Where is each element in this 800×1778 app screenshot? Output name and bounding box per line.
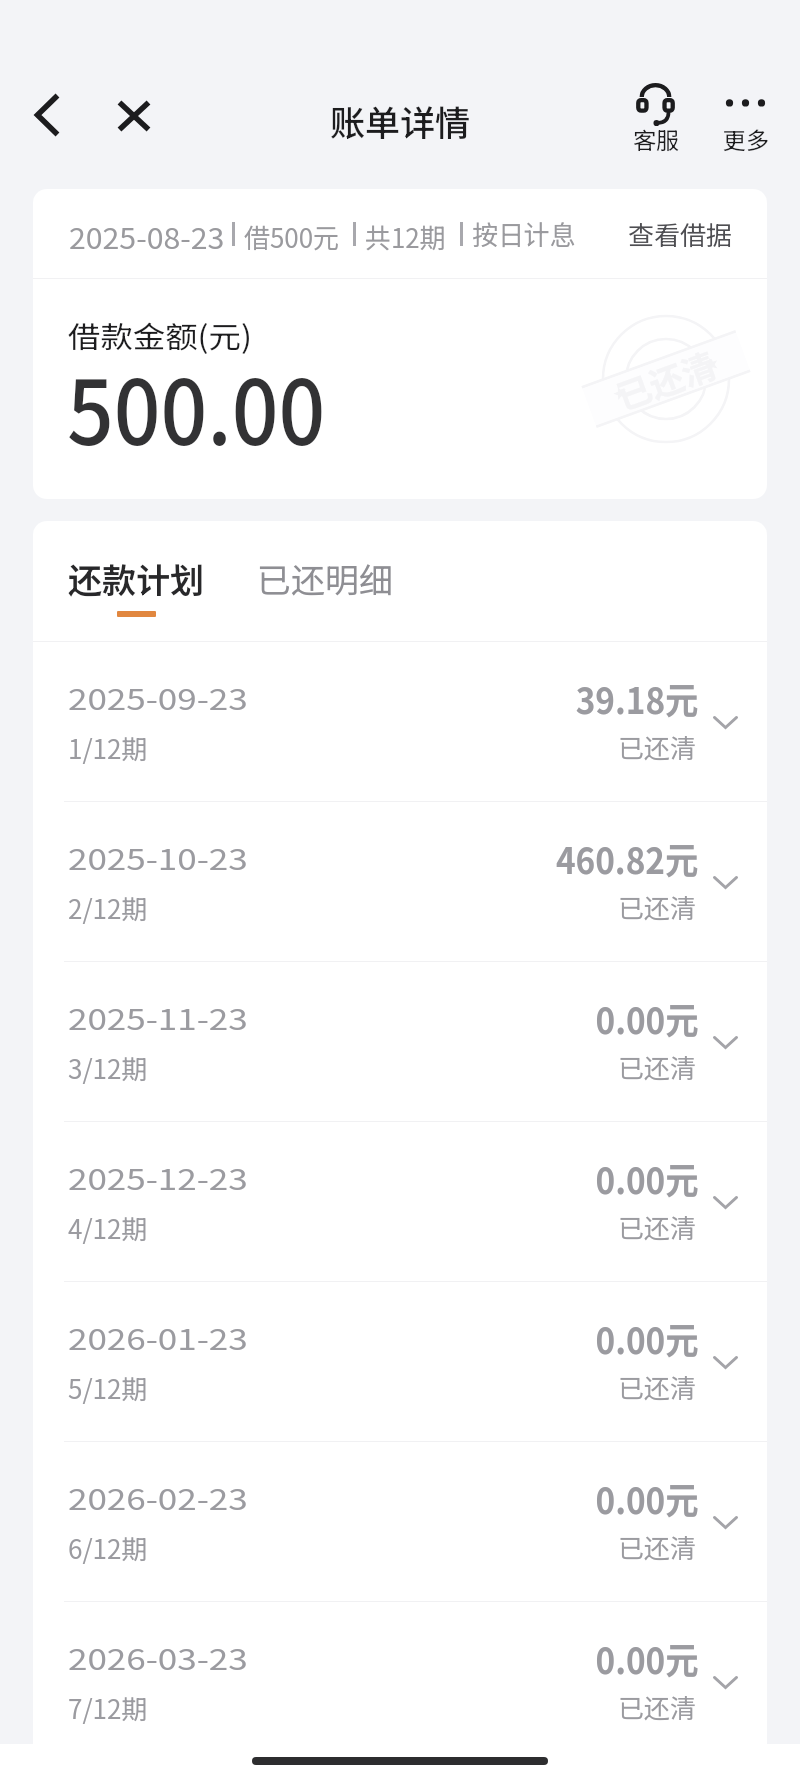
staticText: 2025-12-23 <box>68 1158 248 1199</box>
staticText: 0.00元 <box>595 1151 699 1205</box>
staticText: 39.18元 <box>576 671 699 725</box>
staticText: 5/12期 <box>68 1369 148 1407</box>
button[interactable]: More <box>711 76 781 158</box>
button[interactable]: 2026-01-23 <box>33 1282 767 1441</box>
staticText: 2025-09-23 <box>68 678 248 719</box>
staticText: 7/12期 <box>68 1689 148 1727</box>
staticText: 已还清 <box>618 1528 697 1566</box>
staticText: 2025-10-23 <box>68 838 248 879</box>
staticText: 0.00元 <box>595 1471 699 1525</box>
staticText: 更多 <box>723 122 769 155</box>
staticText: 已还明细 <box>257 554 393 603</box>
button[interactable]: Back <box>16 85 76 145</box>
staticText: 账单详情 <box>330 95 471 146</box>
button[interactable]: 2025-09-23 <box>33 642 767 801</box>
staticText: 已还清 <box>618 888 697 926</box>
button[interactable]: 2025-11-23 <box>33 962 767 1121</box>
button[interactable]: 客服 <box>621 76 691 158</box>
staticText: 2026-03-23 <box>68 1638 248 1679</box>
staticText: 查看借据 <box>628 215 733 253</box>
staticText: 已还清 <box>618 728 697 766</box>
button[interactable]: 查看借据 <box>628 215 733 253</box>
staticText: 2026-02-23 <box>68 1478 248 1519</box>
button[interactable]: 2026-03-23 <box>33 1602 767 1761</box>
staticText: 借500元 <box>244 217 339 251</box>
button[interactable]: 2025-12-23 <box>33 1122 767 1281</box>
staticText: 0.00元 <box>595 1631 699 1685</box>
staticText: 2025-08-23 <box>69 217 224 251</box>
staticText: 按日计息 <box>472 214 576 253</box>
staticText: 已还清 <box>618 1368 697 1406</box>
staticText: 4/12期 <box>68 1209 148 1247</box>
staticText: 已还清 <box>618 1048 697 1086</box>
button[interactable]: Close <box>104 86 164 146</box>
staticText: 借款金额(元) <box>68 313 253 356</box>
staticText: 已还清 <box>618 1688 697 1726</box>
staticText: 500.00 <box>67 342 326 471</box>
staticText: 3/12期 <box>68 1049 148 1087</box>
button[interactable]: 已还明细 <box>227 521 387 641</box>
button[interactable]: 2025-10-23 <box>33 802 767 961</box>
staticText: 已还清 <box>618 1208 697 1246</box>
staticText: 还款计划 <box>68 554 204 603</box>
staticText: 1/12期 <box>68 729 148 767</box>
staticText: 6/12期 <box>68 1529 148 1567</box>
button[interactable]: 2026-02-23 <box>33 1442 767 1601</box>
staticText: 0.00元 <box>595 1311 699 1365</box>
staticText: 2/12期 <box>68 889 148 927</box>
staticText: 客服 <box>633 122 679 155</box>
staticText: 460.82元 <box>556 831 699 885</box>
staticText: 2025-11-23 <box>68 998 248 1039</box>
staticText: 共12期 <box>365 217 446 251</box>
staticText: 已还清 <box>610 339 722 420</box>
staticText: 0.00元 <box>595 991 699 1045</box>
button[interactable]: 还款计划 <box>68 521 208 641</box>
staticText: 2026-01-23 <box>68 1318 248 1359</box>
